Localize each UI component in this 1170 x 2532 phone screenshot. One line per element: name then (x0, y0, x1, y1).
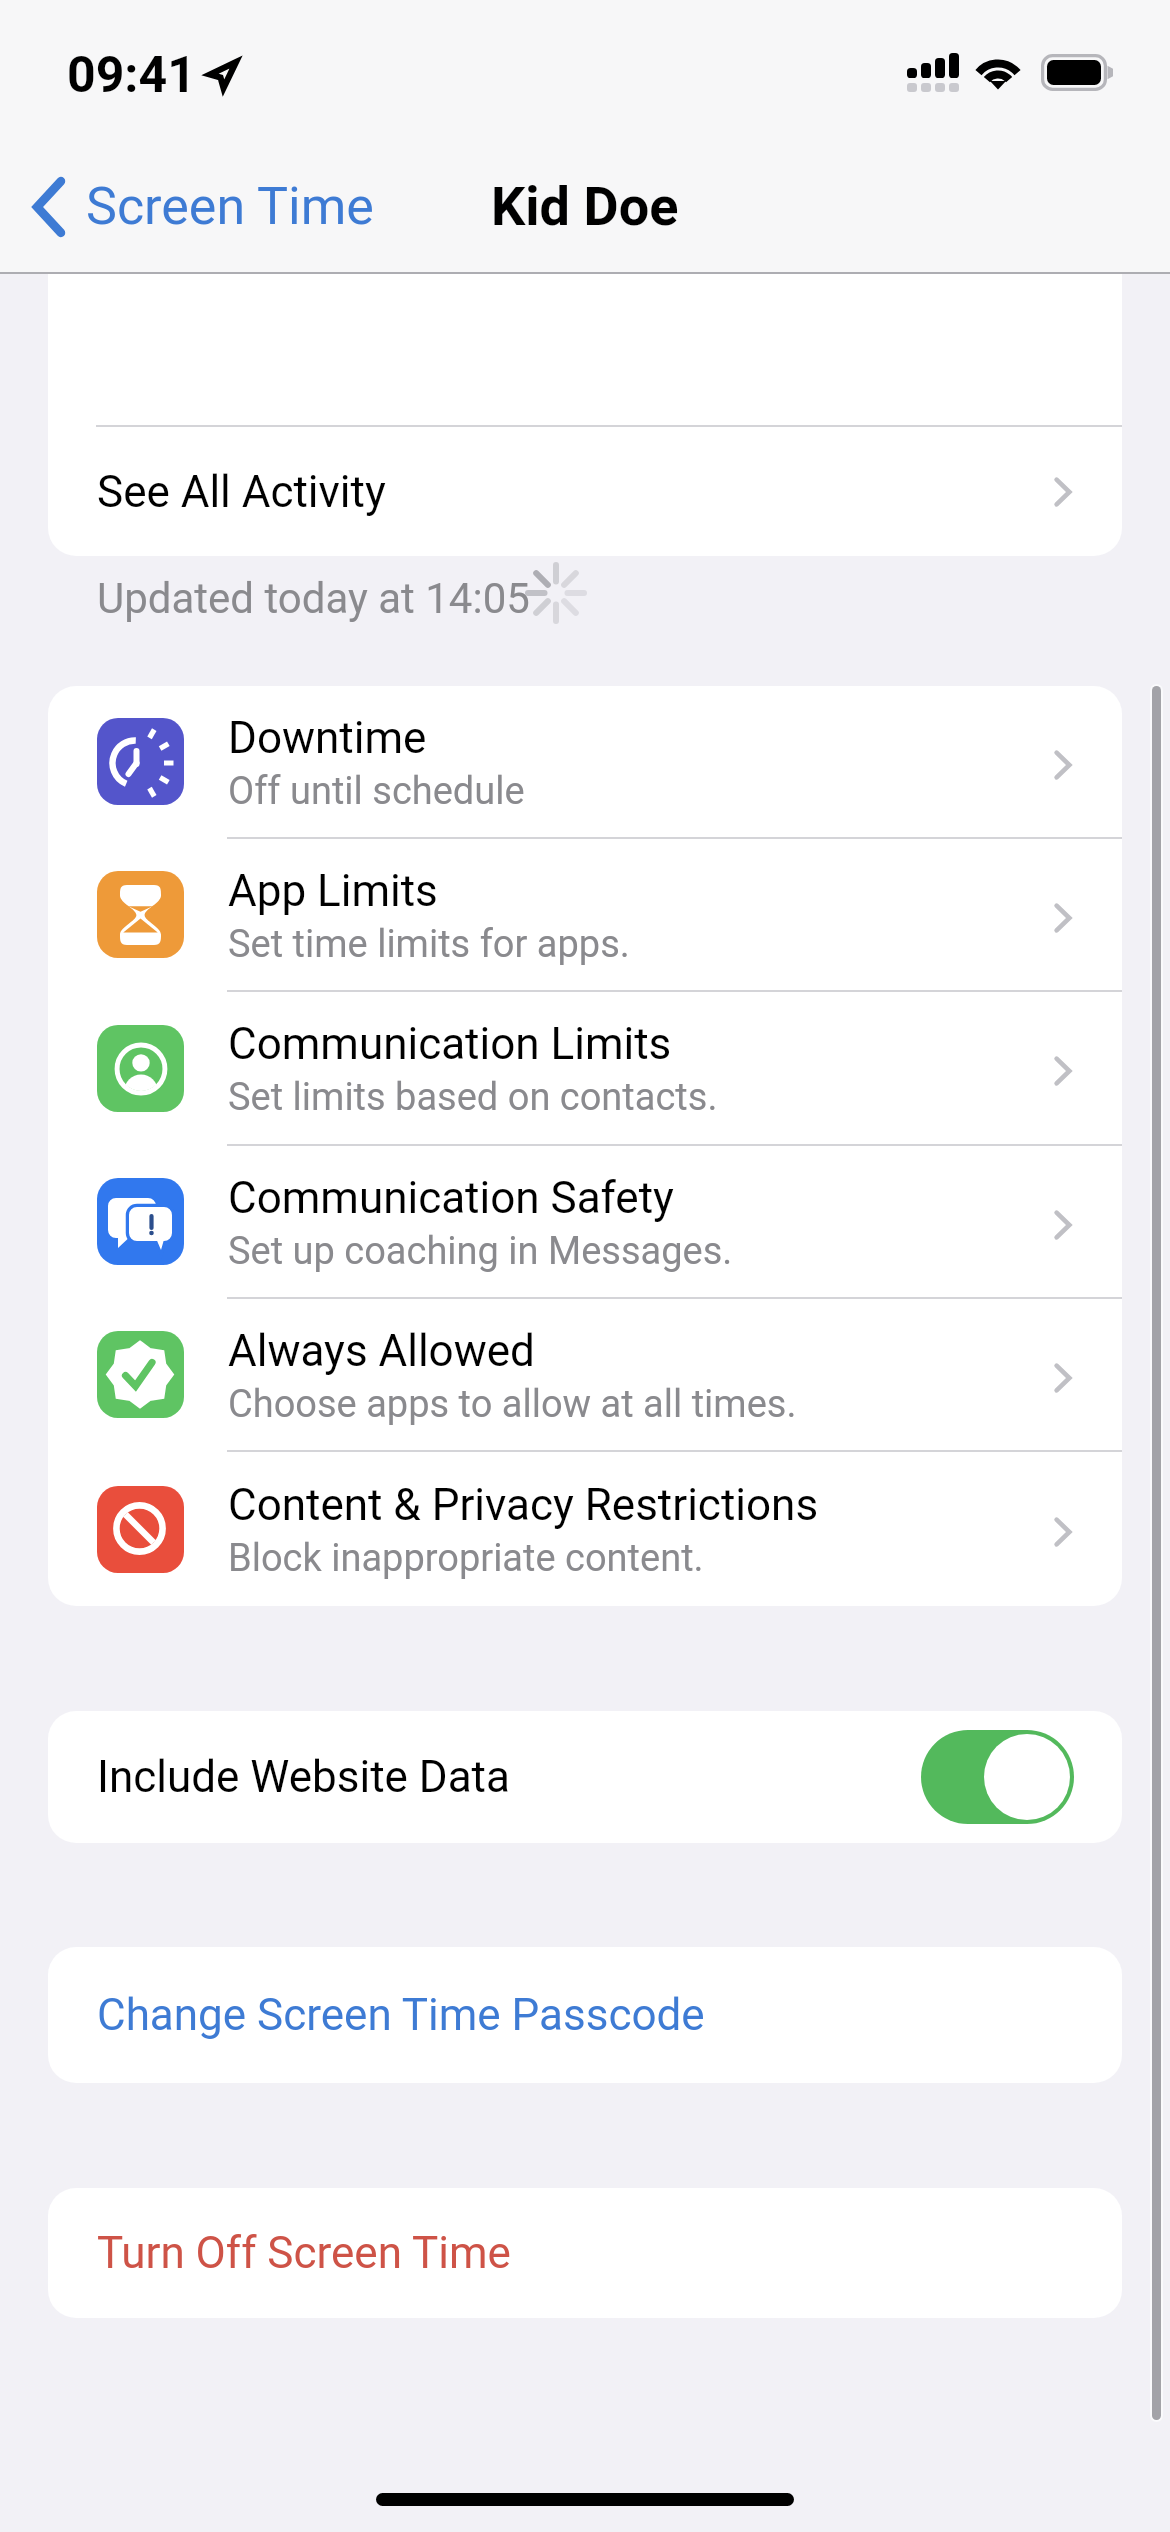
staticText: 09:41 (67, 46, 196, 105)
button[interactable]: Communication Limits (48, 992, 1122, 1146)
staticText: Turn Off Screen Time (97, 2227, 511, 2279)
staticText: Choose apps to allow at all times. (228, 1382, 797, 1427)
staticText: Set up coaching in Messages. (228, 1229, 733, 1274)
staticText: Set limits based on contacts. (228, 1075, 718, 1120)
staticText: Include Website Data (97, 1751, 921, 1803)
button[interactable]: Change Screen Time Passcode (48, 1947, 1122, 2083)
staticText: Kid Doe (491, 175, 679, 238)
button[interactable]: Screen Time (22, 160, 384, 253)
staticText: Block inappropriate content. (228, 1536, 704, 1581)
staticText: Communication Limits (228, 1018, 672, 1070)
staticText: Content & Privacy Restrictions (228, 1479, 819, 1531)
button[interactable]: Turn Off Screen Time (48, 2188, 1122, 2318)
staticText: Screen Time (86, 176, 374, 237)
button[interactable]: Include Website Data (48, 1711, 1122, 1843)
staticText: Off until schedule (228, 769, 525, 814)
staticText: See All Activity (97, 466, 1054, 518)
button[interactable]: Downtime (48, 686, 1122, 839)
button[interactable]: App Limits (48, 839, 1122, 992)
staticText: Always Allowed (228, 1325, 535, 1377)
button[interactable]: Communication Safety (48, 1146, 1122, 1299)
staticText: Change Screen Time Passcode (97, 1989, 705, 2041)
staticText: Communication Safety (228, 1172, 674, 1224)
staticText: Downtime (228, 712, 427, 764)
staticText: Set time limits for apps. (228, 922, 630, 967)
staticText: App Limits (228, 865, 438, 917)
button[interactable]: See All Activity (48, 427, 1122, 556)
button[interactable]: Always Allowed (48, 1299, 1122, 1452)
staticText: Updated today at 14:05 (97, 574, 530, 623)
button[interactable]: Content & Privacy Restrictions (48, 1452, 1122, 1606)
